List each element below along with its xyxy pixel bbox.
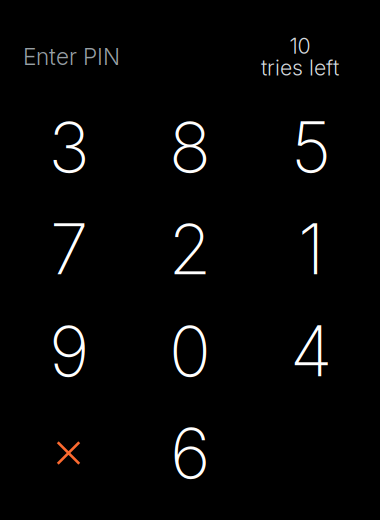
staticText: 10 xyxy=(289,33,310,59)
staticText: 7 xyxy=(50,207,88,291)
button[interactable]: 2 xyxy=(129,198,250,300)
button[interactable]: 9 xyxy=(8,300,129,402)
staticText: 2 xyxy=(168,207,211,291)
button[interactable]: 8 xyxy=(129,96,250,198)
staticText: 6 xyxy=(170,411,210,495)
button[interactable]: 4 xyxy=(250,300,371,402)
staticText: 5 xyxy=(291,105,331,189)
button[interactable]: Delete xyxy=(8,402,129,504)
staticText: tries left xyxy=(261,55,339,81)
button[interactable]: 1 xyxy=(250,198,371,300)
staticText: 3 xyxy=(48,105,89,189)
staticText: 0 xyxy=(169,309,211,393)
staticText: 9 xyxy=(49,309,89,393)
button[interactable]: Enter PIN xyxy=(23,43,120,70)
button[interactable]: 3 xyxy=(8,96,129,198)
staticText: 1 xyxy=(298,207,324,291)
staticText: 4 xyxy=(290,309,332,393)
staticText: 8 xyxy=(169,105,211,189)
staticText: Enter PIN xyxy=(23,43,120,70)
button[interactable]: 0 xyxy=(129,300,250,402)
button[interactable]: 6 xyxy=(129,402,250,504)
button[interactable]: 7 xyxy=(8,198,129,300)
button[interactable]: 5 xyxy=(250,96,371,198)
